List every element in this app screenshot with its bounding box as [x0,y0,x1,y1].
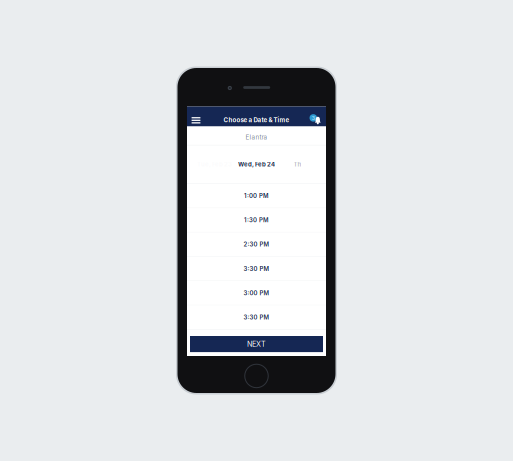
button[interactable]: 1:00 PM [187,184,326,208]
button[interactable]: NEXT [190,336,323,352]
staticText: NEXT [247,340,266,348]
button[interactable]: 3:30 PM [187,305,326,330]
button[interactable]: Menu [187,106,207,126]
staticText: Elantra [245,133,267,141]
button[interactable]: 1:30 PM [187,208,326,233]
staticText: 3:30 PM [243,265,269,272]
staticText: Choose a Date & Time [223,116,289,124]
staticText: 2:30 PM [243,241,269,248]
staticText: Wed, Feb 24 [238,161,275,168]
staticText: 1:30 PM [244,216,269,224]
button[interactable]: 3:30 PM [187,257,326,281]
staticText: Thu, Feb 25 [293,161,328,168]
button[interactable]: 2:30 PM [187,233,326,257]
button[interactable]: Notifications [306,106,326,126]
staticText: 3 [312,115,315,121]
staticText: 3:00 PM [243,289,269,297]
staticText: 1:00 PM [244,192,269,199]
staticText: 3:30 PM [243,314,269,321]
button[interactable]: 3:00 PM [187,281,326,305]
